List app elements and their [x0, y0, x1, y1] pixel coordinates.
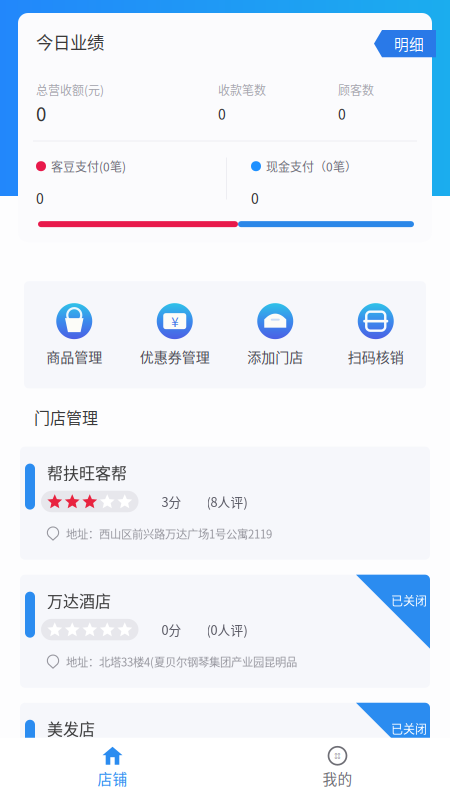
staticText: 地址：北塔33楼4(夏贝尔钢琴集团产业园昆明品 [66, 653, 297, 670]
staticText: 现金支付（0笔） [266, 157, 357, 175]
staticText: 我的 [322, 768, 352, 789]
button[interactable]: ¥ [124, 303, 225, 366]
button[interactable]: 明细 [374, 30, 436, 57]
staticText: 总营收额(元) [36, 81, 104, 98]
staticText: 店铺 [97, 768, 127, 789]
button[interactable]: 万达酒店 [20, 575, 430, 688]
staticText: 0 [251, 188, 259, 208]
button[interactable]: 美发店 [20, 703, 430, 800]
staticText: 地址：西山区前兴路万达广场1号公寓2119 [66, 525, 272, 542]
staticText: 明细 [394, 33, 424, 54]
staticText: ¥ [171, 311, 178, 331]
staticText: 0 [218, 103, 226, 124]
button[interactable]: 添加门店 [225, 303, 325, 366]
button[interactable]: 商品管理 [24, 303, 124, 366]
staticText: 地址：云南省昆明市五华区艺术小区 [66, 781, 242, 798]
staticText: 收款笔数 [218, 81, 266, 98]
staticText: (0人评) [206, 620, 247, 639]
staticText: 0 [36, 99, 46, 126]
staticText: 已关闭 [391, 592, 427, 609]
staticText: 帮扶旺客帮 [47, 461, 127, 484]
staticText: 0分 [161, 620, 181, 639]
staticText: 商品管理 [46, 346, 102, 366]
button[interactable]: 扫码核销 [325, 303, 426, 366]
staticText: 3分 [161, 492, 181, 511]
staticText: (8人评) [206, 492, 247, 511]
button[interactable]: ⦂⦂ [225, 747, 450, 789]
staticText: 已关闭 [391, 720, 427, 737]
staticText: 门店管理 [34, 405, 98, 429]
staticText: 万达酒店 [47, 589, 111, 612]
staticText: 顾客数 [338, 81, 374, 98]
staticText: 美发店 [47, 717, 95, 740]
staticText: 优惠券管理 [140, 346, 210, 366]
button[interactable]: 店铺 [0, 747, 225, 789]
staticText: 0 [338, 103, 346, 124]
button[interactable]: 帮扶旺客帮 [20, 447, 430, 560]
staticText: 扫码核销 [348, 346, 404, 366]
staticText: 0 [36, 188, 44, 208]
staticText: 添加门店 [247, 346, 303, 366]
staticText: 客豆支付(0笔) [51, 157, 126, 175]
staticText: ⦂⦂ [334, 751, 340, 760]
staticText: 今日业绩 [36, 29, 104, 54]
